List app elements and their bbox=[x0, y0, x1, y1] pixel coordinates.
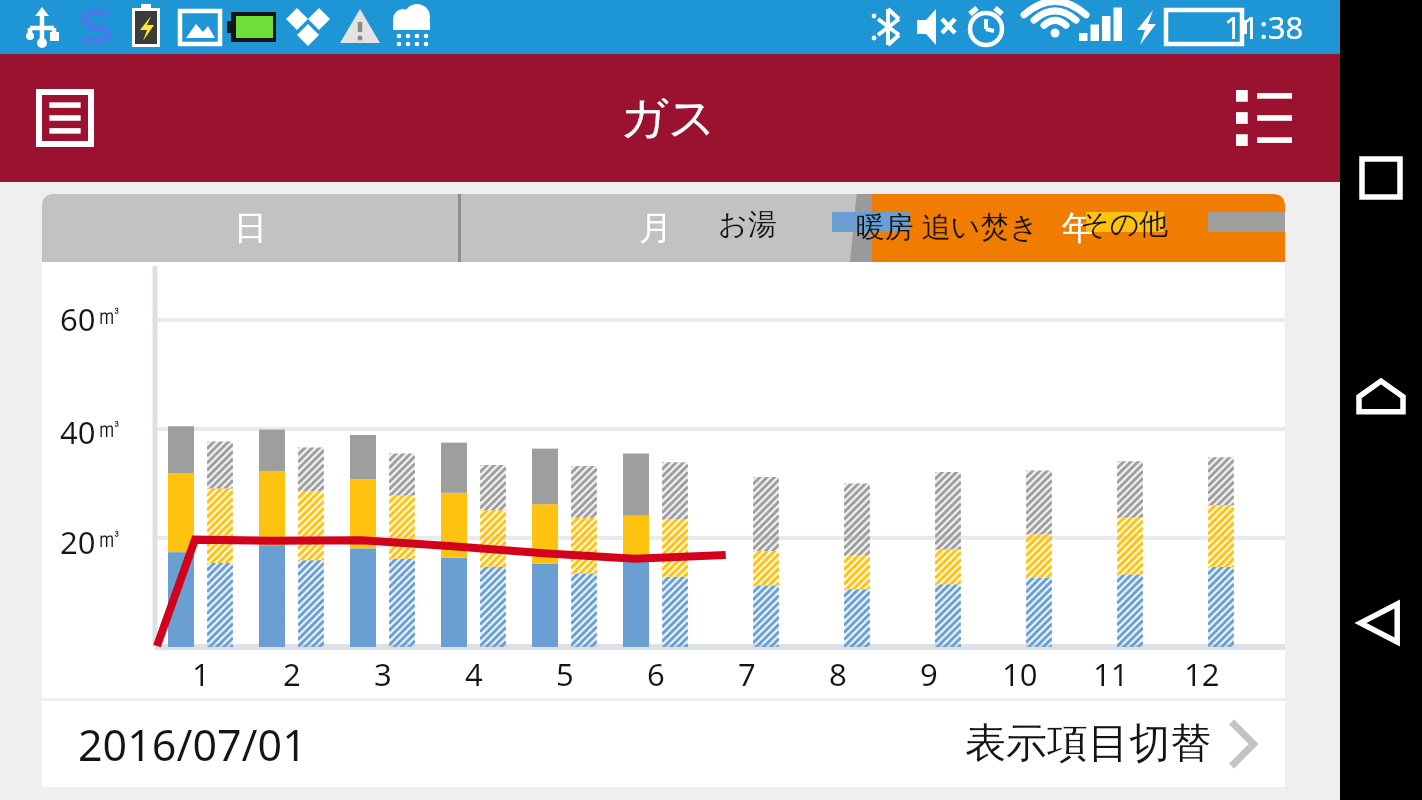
staticText: 暖房 追い焚き bbox=[856, 206, 1039, 246]
button[interactable]: Back bbox=[1354, 596, 1408, 650]
button[interactable]: 日 bbox=[42, 194, 458, 262]
staticText: お湯 bbox=[718, 206, 777, 243]
button[interactable]: 2016/07/01 bbox=[42, 701, 1285, 787]
button[interactable]: Recent apps bbox=[1355, 152, 1407, 204]
staticText: 8 bbox=[829, 653, 847, 695]
staticText: 12 bbox=[1184, 653, 1220, 695]
staticText: 10 bbox=[1002, 653, 1038, 695]
staticText: 2016/07/01 bbox=[78, 715, 307, 774]
button[interactable]: 月 bbox=[461, 194, 850, 262]
button[interactable]: List view bbox=[1236, 90, 1292, 146]
staticText: その他 bbox=[1080, 206, 1169, 243]
button[interactable]: Home bbox=[1354, 374, 1408, 428]
staticText: ガス bbox=[620, 89, 717, 148]
staticText: 11:38 bbox=[1224, 6, 1304, 48]
staticText: 表示項目切替 bbox=[965, 718, 1211, 770]
staticText: 7 bbox=[738, 653, 756, 695]
staticText: 9 bbox=[920, 653, 938, 695]
staticText: 6 bbox=[647, 653, 665, 695]
staticText: 5 bbox=[556, 653, 574, 695]
staticText: ㎥ bbox=[96, 411, 123, 445]
staticText: 月 bbox=[639, 207, 672, 249]
staticText: ㎥ bbox=[96, 298, 123, 332]
staticText: 1 bbox=[192, 653, 210, 695]
staticText: 20 bbox=[60, 521, 96, 563]
staticText: 年 bbox=[1062, 207, 1095, 249]
staticText: 2 bbox=[283, 653, 301, 695]
button[interactable]: 年 bbox=[872, 194, 1285, 262]
button[interactable]: Menu bbox=[36, 89, 94, 147]
staticText: 40 bbox=[60, 411, 96, 453]
staticText: 11 bbox=[1093, 653, 1129, 695]
staticText: ㎥ bbox=[96, 521, 123, 555]
staticText: 4 bbox=[465, 653, 483, 695]
staticText: 3 bbox=[374, 653, 392, 695]
staticText: 60 bbox=[60, 298, 96, 340]
staticText: 日 bbox=[234, 207, 267, 249]
